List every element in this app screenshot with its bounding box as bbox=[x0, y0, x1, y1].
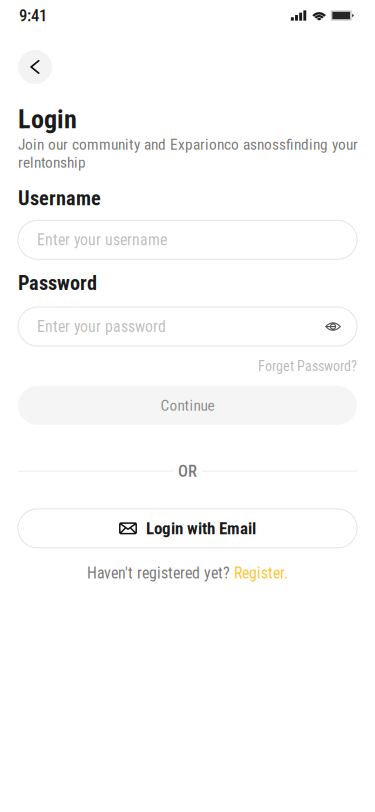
staticText: Enter your password bbox=[37, 317, 166, 336]
staticText: Haven't registered yet? bbox=[87, 564, 230, 582]
staticText: Register. bbox=[234, 564, 288, 582]
staticText: Login bbox=[18, 104, 77, 135]
staticText: 9:41 bbox=[19, 6, 47, 25]
staticText: Password bbox=[18, 271, 97, 295]
button[interactable]: Back bbox=[18, 50, 52, 84]
staticText: OR bbox=[178, 461, 197, 481]
staticText: Enter your username bbox=[37, 231, 167, 249]
button[interactable]: Show password bbox=[325, 321, 341, 332]
staticText: Join our community and Exparionco asnoss… bbox=[18, 136, 358, 171]
staticText: Continue bbox=[160, 396, 214, 414]
button[interactable]: Login with Email bbox=[18, 509, 357, 548]
staticText: Forget Password? bbox=[258, 358, 357, 374]
button[interactable]: Continue bbox=[18, 386, 357, 425]
staticText: Login with Email bbox=[146, 518, 256, 538]
button[interactable]: Forget Password? bbox=[258, 358, 357, 374]
button[interactable]: Register. bbox=[234, 564, 288, 582]
staticText: Username bbox=[18, 187, 101, 210]
